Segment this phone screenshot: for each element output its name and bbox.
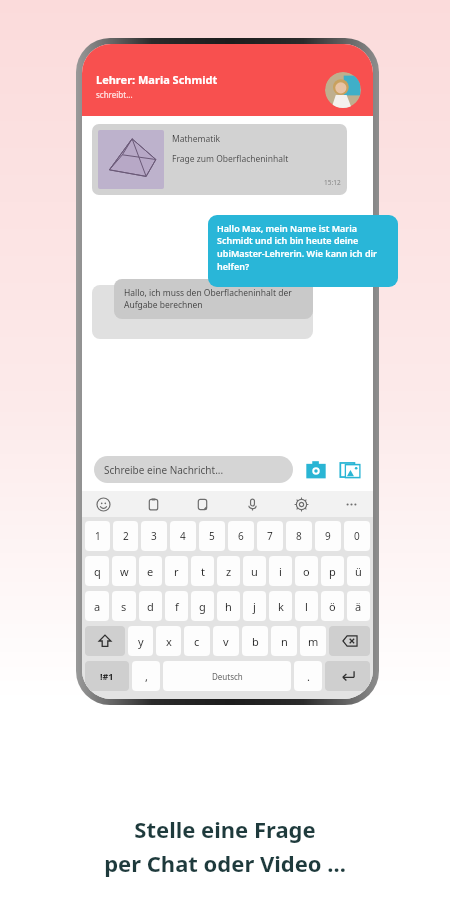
- button[interactable]: Zwischenablage: [146, 497, 161, 512]
- button[interactable]: 9: [315, 521, 341, 551]
- button[interactable]: e: [139, 556, 162, 586]
- button[interactable]: Eingabe: [325, 661, 370, 691]
- button[interactable]: l: [295, 591, 318, 621]
- staticText: schreibt...: [96, 89, 133, 100]
- button[interactable]: m: [300, 626, 326, 656]
- button[interactable]: c: [184, 626, 210, 656]
- button[interactable]: Löschen: [329, 626, 370, 656]
- button[interactable]: Deutsch: [163, 661, 291, 691]
- button[interactable]: !#1: [85, 661, 129, 691]
- button[interactable]: i: [269, 556, 292, 586]
- button[interactable]: Kamera: [305, 459, 327, 481]
- button[interactable]: Umschalt: [85, 626, 125, 656]
- button[interactable]: Mikrofon: [245, 497, 260, 512]
- staticText: r: [174, 564, 179, 579]
- staticText: 8: [296, 529, 302, 543]
- button[interactable]: Schreibe eine Nachricht...: [94, 456, 293, 483]
- button[interactable]: u: [243, 556, 266, 586]
- button[interactable]: q: [85, 556, 109, 586]
- staticText: b: [252, 634, 259, 649]
- staticText: per Chat oder Video ...: [104, 848, 346, 878]
- staticText: ä: [355, 599, 362, 614]
- staticText: Deutsch: [212, 671, 243, 682]
- staticText: Mathematik: [172, 133, 221, 145]
- button[interactable]: 8: [286, 521, 312, 551]
- staticText: h: [225, 599, 232, 614]
- button[interactable]: 7: [257, 521, 283, 551]
- staticText: u: [251, 564, 258, 579]
- button[interactable]: ö: [321, 591, 344, 621]
- staticText: d: [147, 599, 154, 614]
- staticText: 2: [123, 529, 129, 543]
- button[interactable]: b: [242, 626, 268, 656]
- staticText: Frage zum Oberflacheninhalt: [172, 153, 289, 165]
- button[interactable]: g: [191, 591, 214, 621]
- staticText: t: [201, 564, 205, 579]
- staticText: Stelle eine Frage: [134, 814, 316, 844]
- staticText: j: [253, 599, 256, 614]
- button[interactable]: 2: [113, 521, 138, 551]
- staticText: v: [223, 634, 229, 649]
- button[interactable]: Emoji: [96, 497, 111, 512]
- staticText: f: [175, 599, 179, 614]
- button[interactable]: n: [271, 626, 297, 656]
- staticText: e: [147, 564, 154, 579]
- button[interactable]: h: [217, 591, 240, 621]
- button[interactable]: Mathematik: [92, 124, 347, 195]
- staticText: i: [279, 564, 282, 579]
- button[interactable]: x: [156, 626, 181, 656]
- staticText: 6: [238, 529, 244, 543]
- button[interactable]: Mehr: [344, 497, 359, 512]
- staticText: x: [166, 634, 172, 649]
- button[interactable]: .: [294, 661, 322, 691]
- button[interactable]: Lehrer: Maria Schmidt: [96, 72, 325, 100]
- button[interactable]: Lehrerprofil: [325, 72, 361, 108]
- staticText: Schreibe eine Nachricht...: [104, 463, 224, 477]
- button[interactable]: d: [139, 591, 162, 621]
- button[interactable]: ü: [347, 556, 370, 586]
- button[interactable]: f: [165, 591, 188, 621]
- staticText: c: [194, 634, 200, 649]
- button[interactable]: t: [191, 556, 214, 586]
- button[interactable]: 6: [228, 521, 254, 551]
- staticText: p: [329, 564, 336, 579]
- button[interactable]: 0: [344, 521, 370, 551]
- staticText: n: [281, 634, 288, 649]
- button[interactable]: o: [295, 556, 318, 586]
- button[interactable]: Sticker: [195, 497, 210, 512]
- button[interactable]: a: [85, 591, 109, 621]
- button[interactable]: p: [321, 556, 344, 586]
- button[interactable]: r: [165, 556, 188, 586]
- button[interactable]: v: [213, 626, 239, 656]
- staticText: w: [120, 564, 129, 579]
- staticText: g: [199, 599, 206, 614]
- staticText: q: [94, 564, 101, 579]
- button[interactable]: 4: [170, 521, 196, 551]
- staticText: 4: [180, 529, 186, 543]
- staticText: 15:12: [324, 178, 341, 187]
- staticText: z: [226, 564, 232, 579]
- button[interactable]: ,: [132, 661, 160, 691]
- staticText: Hallo Max, mein Name ist Maria Schmidt u…: [217, 222, 389, 273]
- button[interactable]: s: [112, 591, 136, 621]
- button[interactable]: y: [128, 626, 153, 656]
- button[interactable]: 1: [85, 521, 110, 551]
- button[interactable]: ä: [347, 591, 370, 621]
- staticText: 5: [209, 529, 215, 543]
- staticText: Hallo, ich muss den Oberflacheninhalt de…: [124, 287, 303, 311]
- staticText: 9: [325, 529, 331, 543]
- staticText: ü: [355, 564, 362, 579]
- button[interactable]: k: [269, 591, 292, 621]
- staticText: 1: [95, 529, 101, 543]
- button[interactable]: Hallo, ich muss den Oberflacheninhalt de…: [114, 279, 313, 319]
- button[interactable]: w: [112, 556, 136, 586]
- staticText: Lehrer: Maria Schmidt: [96, 72, 218, 87]
- button[interactable]: z: [217, 556, 240, 586]
- button[interactable]: Hallo Max, mein Name ist Maria Schmidt u…: [208, 215, 398, 287]
- staticText: k: [278, 599, 284, 614]
- button[interactable]: 5: [199, 521, 225, 551]
- button[interactable]: Galerie: [339, 459, 361, 481]
- button[interactable]: Einstellungen: [294, 497, 309, 512]
- button[interactable]: j: [243, 591, 266, 621]
- button[interactable]: 3: [141, 521, 167, 551]
